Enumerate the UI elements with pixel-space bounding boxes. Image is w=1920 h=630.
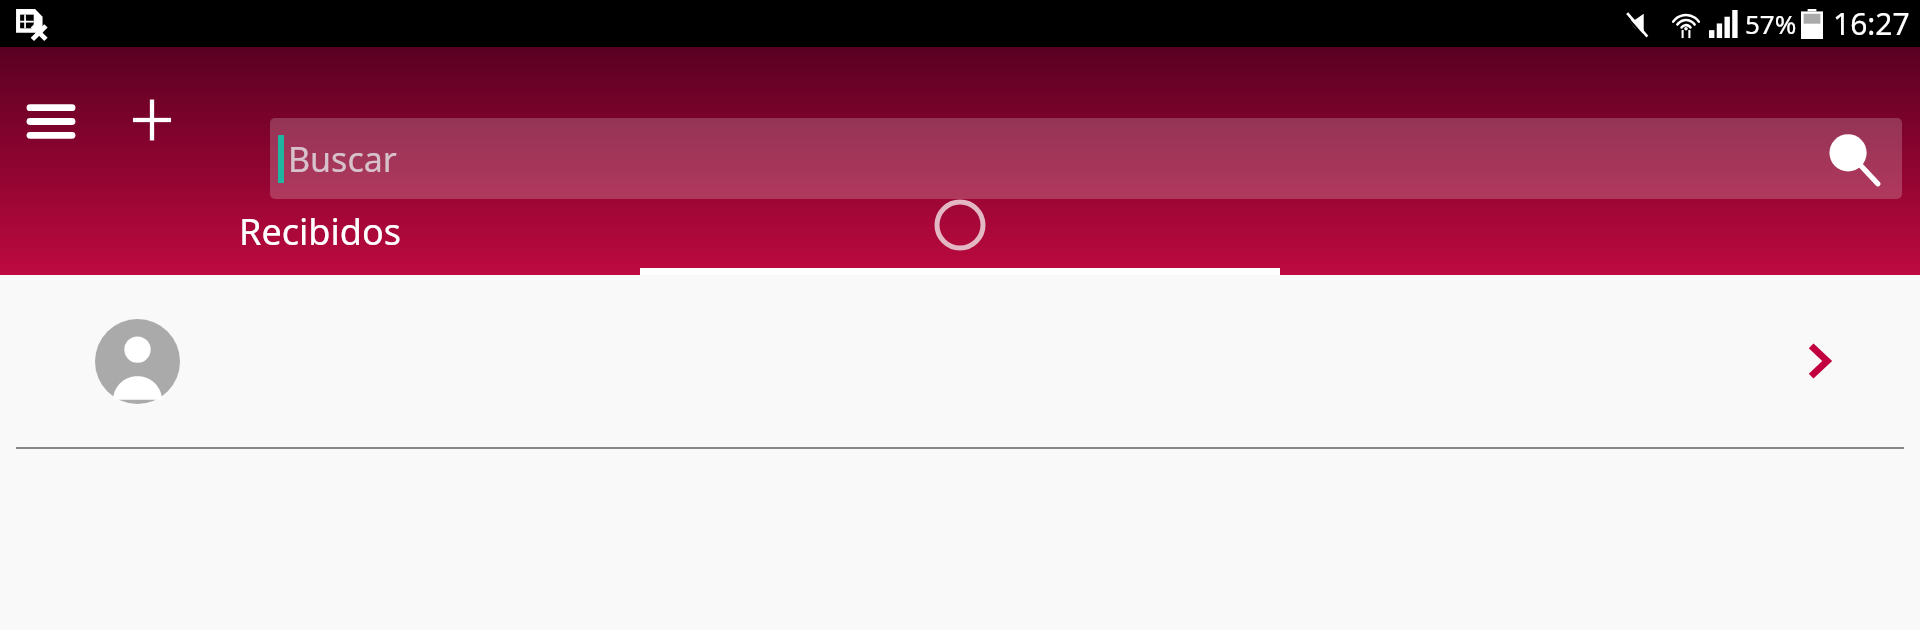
staticText: 57% (1745, 6, 1797, 41)
staticText: Recibidos (239, 207, 401, 256)
button[interactable]: Search (1822, 128, 1884, 190)
button[interactable]: Open (0, 275, 1920, 447)
staticText: 16:27 (1833, 3, 1910, 44)
button[interactable]: Menu (14, 87, 88, 153)
button[interactable]: Circle tab (640, 187, 1280, 275)
button[interactable]: Add (118, 87, 186, 153)
button[interactable]: Open (1780, 321, 1860, 401)
button[interactable] (1280, 187, 1920, 275)
staticText: Buscar (288, 136, 397, 182)
button[interactable]: Recibidos (0, 187, 640, 275)
button[interactable]: Buscar (270, 118, 1902, 199)
